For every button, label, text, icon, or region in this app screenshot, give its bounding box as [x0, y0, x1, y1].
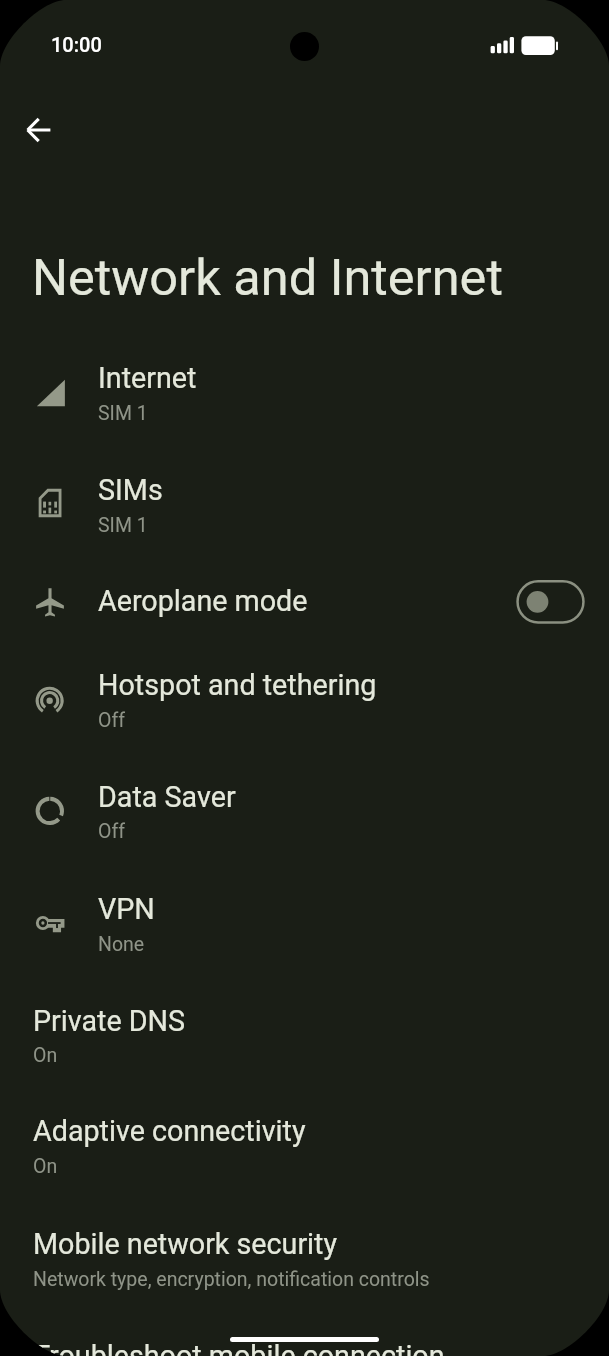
button[interactable]: Back: [15, 106, 63, 154]
button[interactable]: Adaptive connectivity: [0, 1091, 609, 1203]
button[interactable]: Aeroplane mode: [0, 560, 609, 643]
button[interactable]: Mobile network security: [0, 1203, 609, 1315]
staticText: Network and Internet: [32, 248, 503, 307]
staticText: Private DNS: [33, 1004, 186, 1038]
button[interactable]: Internet: [0, 336, 609, 448]
button[interactable]: SIMs: [0, 448, 609, 560]
staticText: Mobile network security: [33, 1227, 338, 1261]
staticText: SIM 1: [98, 514, 148, 537]
button[interactable]: Hotspot and tethering: [0, 643, 609, 755]
staticText: Network type, encryption, notification c…: [33, 1268, 430, 1291]
staticText: Hotspot and tethering: [98, 668, 377, 702]
staticText: On: [33, 1044, 58, 1067]
staticText: Data Saver: [98, 780, 236, 814]
button[interactable]: Data Saver: [0, 755, 609, 867]
button[interactable]: VPN: [0, 867, 609, 979]
staticText: Adaptive connectivity: [33, 1114, 306, 1148]
staticText: VPN: [98, 892, 155, 926]
button[interactable]: Private DNS: [0, 979, 609, 1091]
button[interactable]: Troubleshoot mobile connection: [0, 1315, 609, 1356]
staticText: On: [33, 1155, 58, 1178]
staticText: None: [98, 933, 145, 956]
staticText: 10:00: [51, 33, 102, 56]
staticText: SIMs: [98, 473, 163, 507]
staticText: Off: [98, 709, 125, 732]
staticText: Troubleshoot mobile connection: [33, 1339, 445, 1356]
button[interactable]: Aeroplane mode: [516, 580, 586, 625]
staticText: SIM 1: [98, 402, 148, 425]
staticText: Off: [98, 820, 125, 843]
staticText: Aeroplane mode: [98, 584, 308, 618]
staticText: Internet: [98, 361, 197, 395]
